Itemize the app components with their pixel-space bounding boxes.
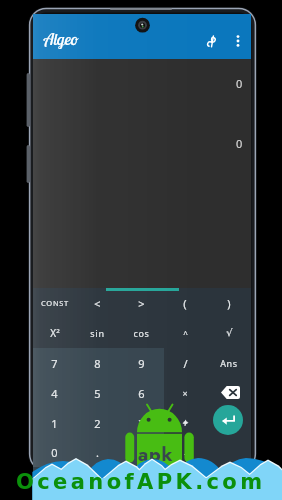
- staticText: >: [138, 296, 145, 311]
- button[interactable]: 7: [33, 348, 76, 378]
- button[interactable]: X²: [33, 318, 76, 348]
- button[interactable]: ^: [163, 318, 207, 348]
- button[interactable]: [207, 408, 251, 438]
- staticText: CONST: [41, 298, 69, 308]
- button[interactable]: Enter: [213, 405, 243, 435]
- staticText: √: [226, 327, 233, 339]
- staticText: 1: [51, 416, 58, 431]
- staticText: sin: [90, 327, 105, 339]
- staticText: 9: [138, 356, 145, 371]
- staticText: OceanofAPK.com: [16, 470, 266, 494]
- button[interactable]: 2: [76, 408, 119, 438]
- staticText: ×: [182, 387, 188, 399]
- button[interactable]: (: [163, 288, 207, 318]
- staticText: .: [96, 445, 99, 460]
- staticText: 5: [94, 386, 101, 401]
- staticText: 0: [236, 76, 243, 91]
- staticText: Algeo: [44, 29, 79, 49]
- button[interactable]: [119, 438, 163, 467]
- button[interactable]: 1: [33, 408, 76, 438]
- button[interactable]: √: [207, 318, 251, 348]
- button[interactable]: ×: [163, 378, 207, 408]
- staticText: 8: [94, 356, 101, 371]
- button[interactable]: Backspace: [208, 377, 252, 407]
- button[interactable]: 8: [76, 348, 119, 378]
- staticText: 6: [138, 386, 145, 401]
- button[interactable]: cos: [119, 318, 163, 348]
- button[interactable]: 3: [119, 408, 163, 438]
- button[interactable]: ): [207, 288, 251, 318]
- staticText: Ans: [220, 357, 238, 369]
- staticText: 0: [51, 445, 58, 460]
- staticText: 7: [51, 356, 58, 371]
- staticText: ^: [183, 328, 188, 339]
- staticText: /: [183, 356, 188, 371]
- button[interactable]: CONST: [33, 288, 76, 318]
- staticText: 2: [94, 416, 101, 431]
- staticText: <: [94, 296, 101, 311]
- button[interactable]: Function plot: [201, 30, 223, 52]
- button[interactable]: .: [76, 438, 119, 467]
- button[interactable]: <: [76, 288, 119, 318]
- button[interactable]: 4: [33, 378, 76, 408]
- button[interactable]: [207, 378, 251, 408]
- staticText: cos: [133, 327, 150, 339]
- staticText: 4: [51, 386, 58, 401]
- button[interactable]: [207, 438, 251, 467]
- staticText: (: [183, 296, 187, 311]
- button[interactable]: sin: [76, 318, 119, 348]
- button[interactable]: 0: [33, 438, 76, 467]
- button[interactable]: 5: [76, 378, 119, 408]
- button[interactable]: -: [163, 438, 207, 467]
- staticText: +: [182, 417, 188, 429]
- staticText: 0: [236, 136, 243, 151]
- staticText: 3: [138, 416, 145, 431]
- button[interactable]: >: [119, 288, 163, 318]
- button[interactable]: More options: [227, 30, 249, 52]
- staticText: apk: [138, 441, 174, 468]
- button[interactable]: 9: [119, 348, 163, 378]
- button[interactable]: 6: [119, 378, 163, 408]
- button[interactable]: /: [163, 348, 207, 378]
- staticText: -: [184, 447, 187, 459]
- staticText: ): [227, 296, 231, 311]
- button[interactable]: +: [163, 408, 207, 438]
- staticText: X²: [50, 326, 60, 340]
- button[interactable]: Ans: [207, 348, 251, 378]
